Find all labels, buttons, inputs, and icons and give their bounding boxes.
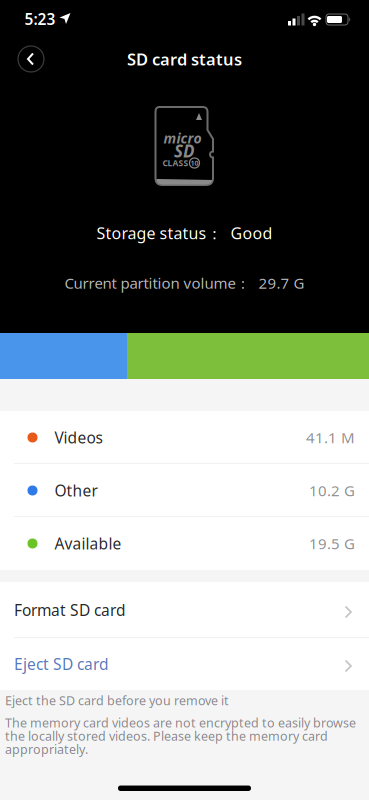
staticText: CLASS [162, 157, 188, 169]
staticText: 41.1 M [306, 427, 355, 448]
button[interactable]: Format SD card [0, 582, 369, 638]
staticText: 5:23 [24, 8, 55, 29]
staticText: micro [163, 128, 201, 148]
staticText: Eject SD card [14, 653, 109, 674]
staticText: Videos [54, 427, 102, 448]
staticText: The memory card videos are not encrypted… [5, 716, 356, 756]
staticText: 10 [190, 158, 198, 168]
button[interactable]: Eject SD card [0, 638, 369, 690]
staticText: SD card status [127, 48, 242, 70]
staticText: Current partition volume： 29.7 G [64, 273, 304, 293]
button[interactable]: Back [17, 45, 44, 72]
staticText: Available [54, 533, 121, 554]
staticText: Storage status： Good [96, 222, 272, 244]
staticText: 10.2 G [309, 480, 355, 501]
staticText: SD [174, 139, 195, 163]
staticText: 19.5 G [309, 533, 355, 554]
staticText: Eject the SD card before you remove it [5, 692, 229, 709]
staticText: Other [54, 480, 97, 501]
staticText: Format SD card [14, 599, 126, 620]
